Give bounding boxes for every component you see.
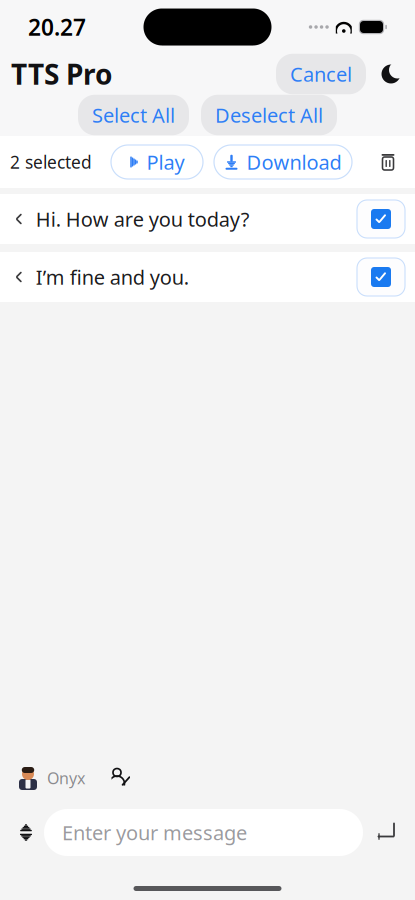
button[interactable]: Onyx [17, 766, 85, 790]
staticText: Deselect All [215, 102, 323, 128]
button[interactable]: Delete [371, 145, 405, 179]
button[interactable]: Reorder [12, 817, 40, 847]
staticText: 20.27 [28, 12, 86, 42]
button[interactable]: Send [369, 815, 403, 849]
button[interactable]: Edit voice [103, 763, 135, 793]
staticText: TTS Pro [11, 55, 113, 93]
staticText: Hi. How are you today? [36, 206, 250, 232]
button[interactable]: Enter your message [44, 809, 363, 856]
staticText: Onyx [47, 767, 85, 789]
button[interactable]: Hi. How are you today? [0, 194, 415, 244]
staticText: Enter your message [62, 819, 247, 846]
button[interactable]: Deselect All [201, 95, 337, 135]
button[interactable]: Select All [78, 95, 189, 135]
staticText: Download [246, 149, 341, 175]
button[interactable]: Play [111, 145, 203, 179]
staticText: 2 selected [10, 150, 92, 173]
button[interactable]: Cancel [276, 54, 366, 94]
staticText: Play [146, 149, 184, 175]
button[interactable]: Download [214, 145, 352, 179]
staticText: Cancel [290, 61, 352, 87]
staticText: I’m fine and you. [36, 264, 189, 290]
staticText: Select All [92, 102, 175, 128]
button[interactable]: I’m fine and you. [0, 252, 415, 302]
button[interactable]: Dark mode [366, 63, 404, 85]
